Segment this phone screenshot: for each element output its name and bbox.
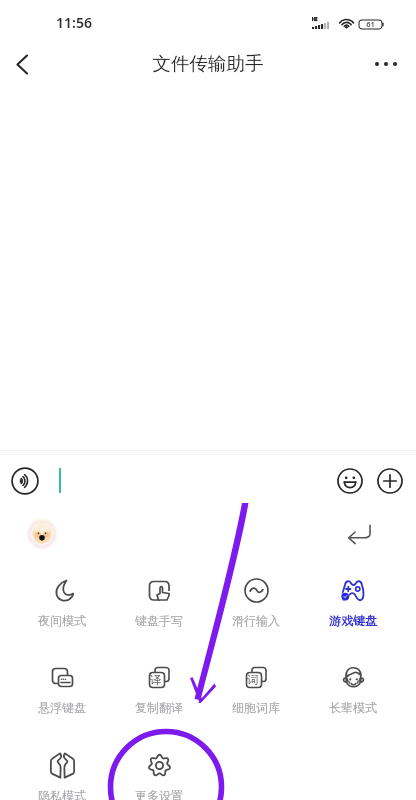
staticText: 悬浮键盘	[15, 700, 109, 715]
staticText: 滑行输入	[209, 613, 303, 628]
button[interactable]: Return	[341, 515, 377, 551]
staticText: 夜间模式	[15, 613, 109, 628]
staticText: 译	[143, 673, 168, 687]
button[interactable]: 悬浮键盘	[15, 660, 109, 736]
staticText: 复制翻译	[112, 700, 206, 715]
button[interactable]: 隐私模式	[15, 748, 109, 800]
staticText: 细胞词库	[209, 700, 303, 715]
button[interactable]: 键盘手写	[112, 573, 206, 649]
staticText: 61	[358, 19, 383, 28]
staticText: 11:56	[56, 13, 92, 32]
button[interactable]: Voice input	[7, 463, 43, 499]
button[interactable]: 译	[112, 660, 206, 736]
button[interactable]: 更多设置	[112, 748, 206, 800]
button[interactable]: 滑行输入	[209, 573, 303, 649]
staticText: 游戏键盘	[306, 613, 400, 628]
button[interactable]: More options	[366, 44, 406, 84]
button[interactable]: Recent sticker	[23, 515, 60, 552]
staticText: 键盘手写	[112, 613, 206, 628]
button[interactable]: 词	[209, 660, 303, 736]
button[interactable]: Back	[2, 44, 42, 84]
staticText: 词	[240, 673, 265, 687]
staticText: 隐私模式	[15, 788, 109, 800]
staticText: 文件传输助手	[0, 52, 416, 75]
staticText: 更多设置	[112, 788, 206, 800]
button[interactable]: Add attachment	[372, 463, 408, 499]
button[interactable]: 夜间模式	[15, 573, 109, 649]
staticText: 长辈模式	[306, 700, 400, 715]
button[interactable]: 游戏键盘	[306, 573, 400, 649]
button[interactable]: 长辈模式	[306, 660, 400, 736]
button[interactable]: Emoji	[332, 463, 368, 499]
